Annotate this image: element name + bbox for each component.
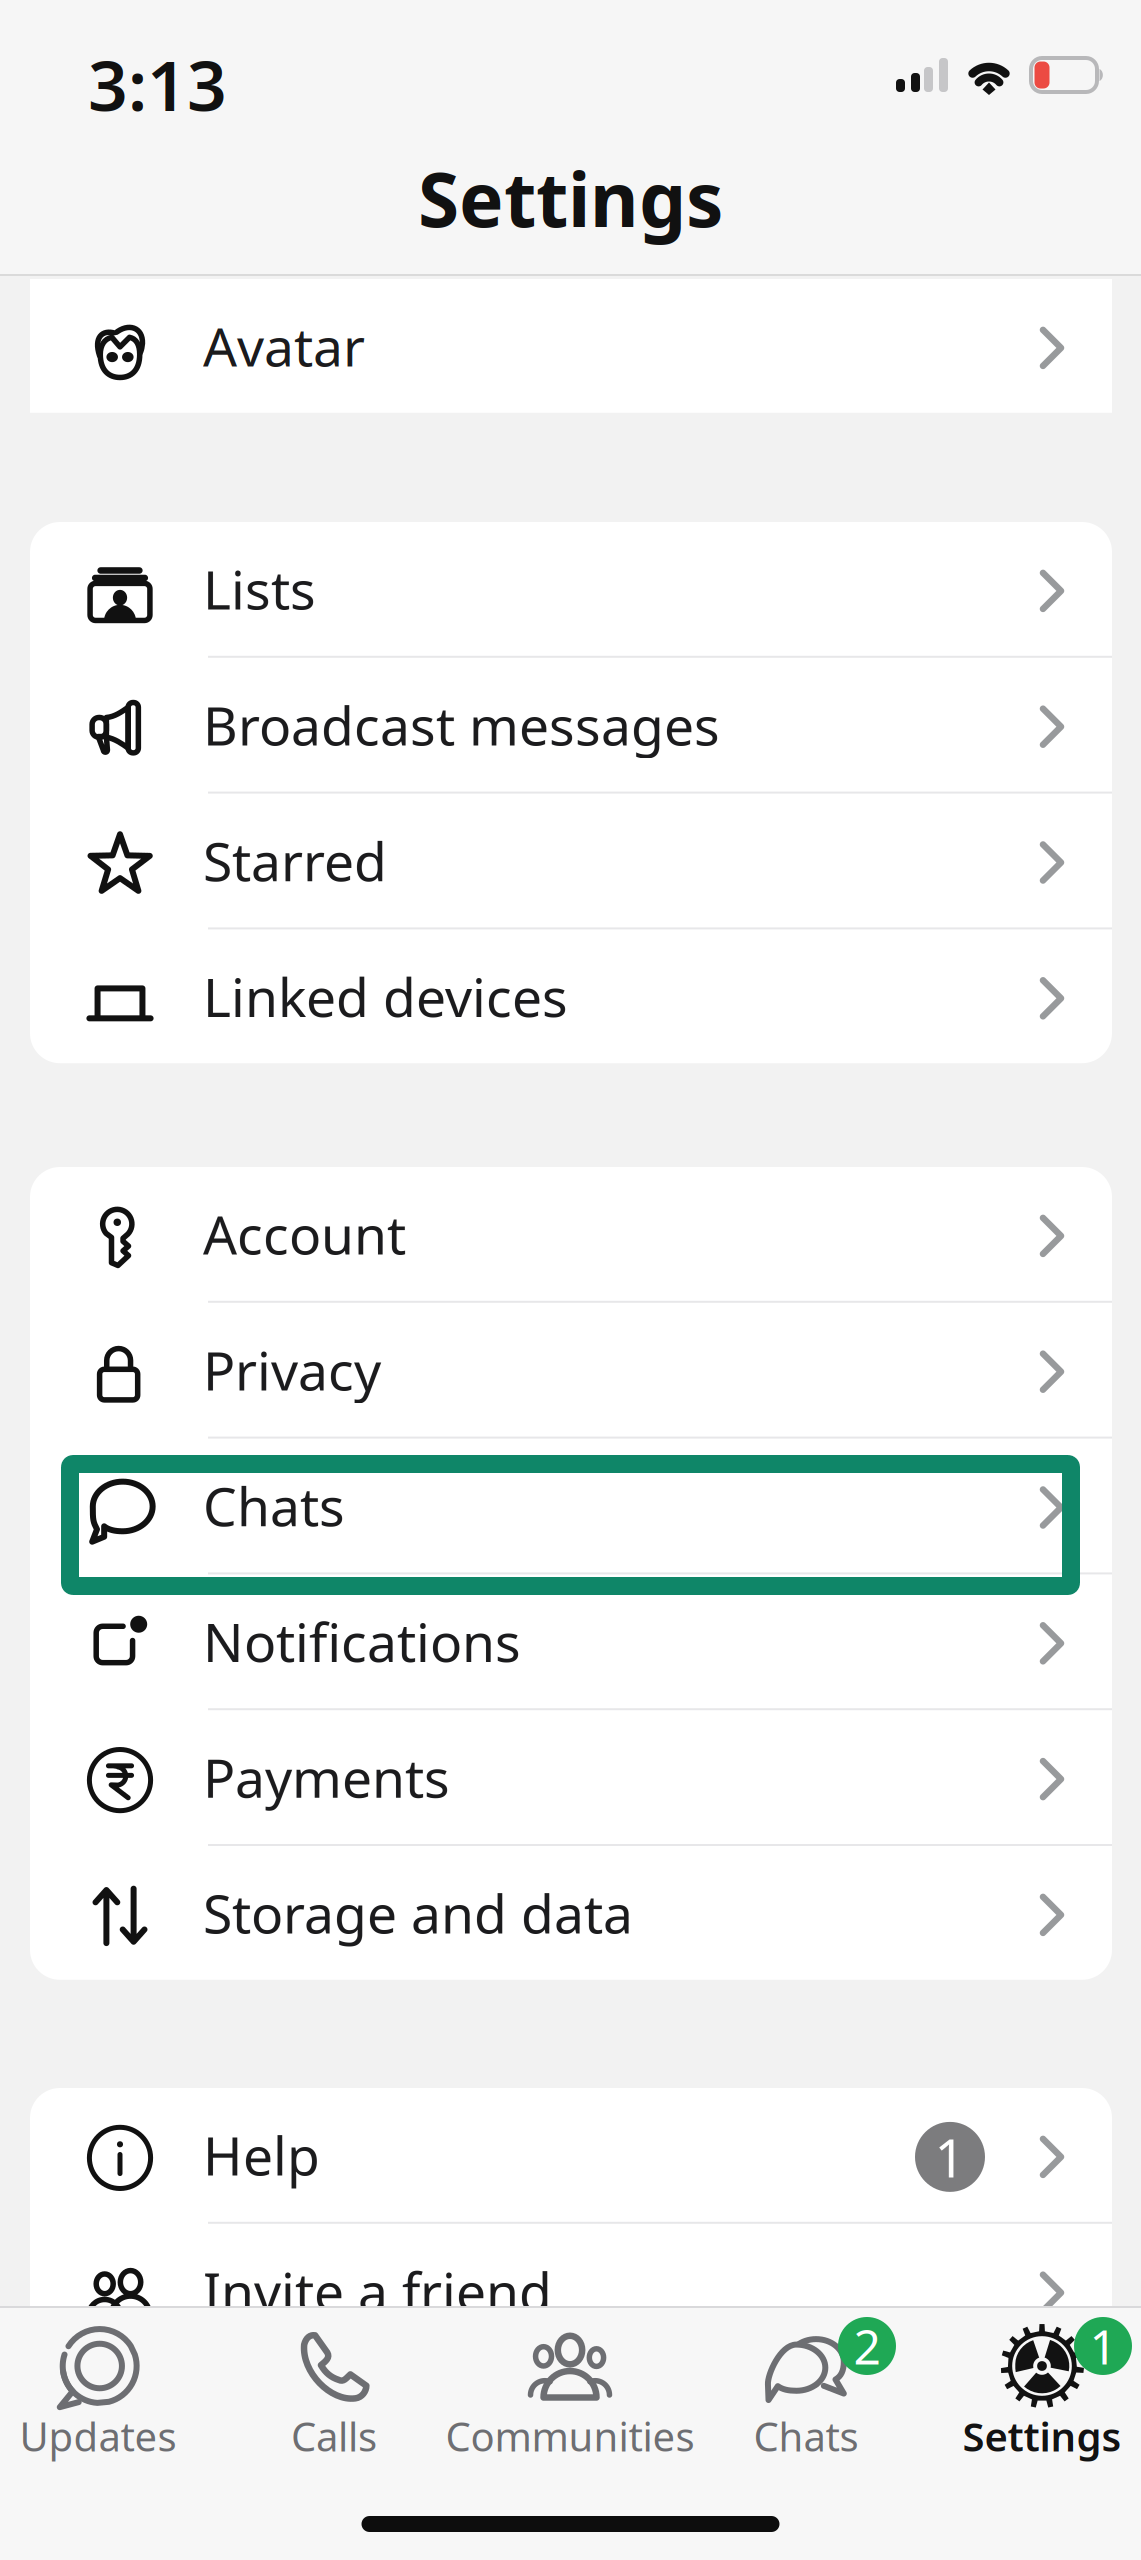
staticText: Linked devices bbox=[203, 961, 568, 1032]
staticText: Settings bbox=[962, 2409, 1121, 2462]
button[interactable]: Calls bbox=[209, 2310, 459, 2458]
button[interactable]: Avatar bbox=[30, 279, 1112, 413]
staticText: Lists bbox=[203, 553, 316, 624]
staticText: 1 bbox=[1089, 2314, 1116, 2378]
staticText: Chats bbox=[753, 2409, 858, 2462]
button[interactable]: Invite a friend bbox=[30, 2224, 1112, 2358]
staticText: Storage and data bbox=[203, 1877, 633, 1948]
staticText: Starred bbox=[203, 825, 387, 896]
staticText: Broadcast messages bbox=[203, 689, 720, 760]
staticText: Privacy bbox=[203, 1334, 381, 1405]
button[interactable]: Updates bbox=[0, 2310, 223, 2458]
staticText: Settings bbox=[418, 148, 723, 248]
button[interactable]: Account bbox=[30, 1167, 1112, 1301]
staticText: Notifications bbox=[203, 1606, 521, 1677]
staticText: 2 bbox=[853, 2314, 880, 2378]
button[interactable]: Storage and data bbox=[30, 1846, 1112, 1980]
staticText: Payments bbox=[203, 1742, 450, 1812]
staticText: Updates bbox=[19, 2409, 176, 2462]
staticText: Chats bbox=[203, 1470, 345, 1541]
button[interactable]: Lists bbox=[30, 522, 1112, 656]
staticText: Account bbox=[203, 1198, 406, 1269]
staticText: Avatar bbox=[203, 310, 365, 381]
staticText: 3:13 bbox=[88, 38, 227, 130]
staticText: Invite a friend bbox=[203, 2255, 552, 2326]
staticText: Communities bbox=[445, 2409, 694, 2462]
staticText: Calls bbox=[291, 2409, 377, 2462]
staticText: 1 bbox=[934, 2121, 965, 2192]
button[interactable]: Linked devices bbox=[30, 929, 1112, 1063]
staticText: Help bbox=[203, 2119, 320, 2190]
button[interactable]: Payments bbox=[30, 1710, 1112, 1844]
button[interactable]: Broadcast messages bbox=[30, 658, 1112, 792]
button[interactable]: Chats bbox=[30, 1439, 1112, 1572]
button[interactable]: 2 bbox=[681, 2310, 931, 2458]
button[interactable]: Starred bbox=[30, 794, 1112, 927]
button[interactable]: Help bbox=[30, 2088, 1112, 2222]
button[interactable]: 1 bbox=[917, 2310, 1141, 2458]
button[interactable]: Communities bbox=[445, 2310, 695, 2458]
button[interactable]: Notifications bbox=[30, 1574, 1112, 1708]
button[interactable]: Privacy bbox=[30, 1303, 1112, 1437]
